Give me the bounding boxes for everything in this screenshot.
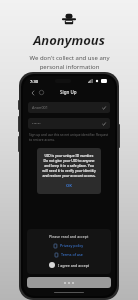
button[interactable]: History xyxy=(37,88,46,97)
staticText: Terms of use xyxy=(61,252,83,257)
button[interactable]: •••••• xyxy=(28,118,110,129)
staticText: Sign Up xyxy=(60,89,77,95)
button[interactable]: OK xyxy=(63,182,75,189)
button[interactable]: Privacy policy xyxy=(51,242,87,249)
staticText: UID is your unique ID number. Do not giv… xyxy=(42,153,96,178)
staticText: Sign up and use this secret unique ident… xyxy=(29,133,109,142)
staticText: Privacy policy xyxy=(60,243,84,248)
button[interactable] xyxy=(27,277,111,288)
staticText: Anonymous xyxy=(33,31,105,49)
staticText: Anon001 xyxy=(32,105,48,110)
staticText: •••••• xyxy=(32,121,41,126)
staticText: I agree and accept xyxy=(58,263,90,268)
button[interactable]: I agree and accept xyxy=(46,261,93,269)
button[interactable]: Back xyxy=(28,88,37,97)
button[interactable]: Terms of use xyxy=(52,251,86,258)
staticText: We don't collect and use any personal in… xyxy=(29,54,110,71)
staticText: OK xyxy=(66,183,72,188)
button[interactable]: Anon001 xyxy=(28,102,110,113)
staticText: 7:30 xyxy=(30,79,38,84)
staticText: Please read and accept xyxy=(49,234,89,239)
